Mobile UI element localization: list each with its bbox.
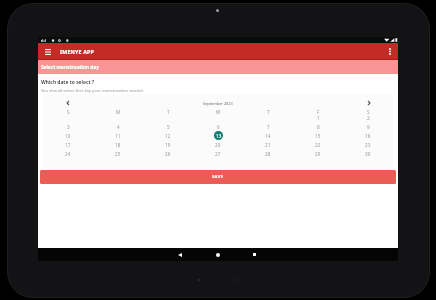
staticText: 14 xyxy=(265,133,271,139)
staticText: 5 xyxy=(167,124,170,130)
button[interactable]: 5 xyxy=(143,122,193,131)
staticText: 16 xyxy=(365,133,371,139)
button[interactable]: 9 xyxy=(343,122,393,131)
button[interactable]: 23 xyxy=(343,140,393,149)
staticText: 8 xyxy=(317,124,320,130)
button[interactable]: SAVE xyxy=(40,170,396,184)
button[interactable]: Previous month xyxy=(61,96,75,110)
button[interactable]: 12 xyxy=(143,131,193,140)
button[interactable]: 21 xyxy=(243,140,293,149)
button[interactable]: 25 xyxy=(93,149,143,158)
staticText: 2 xyxy=(367,115,370,121)
staticText: F xyxy=(317,109,320,115)
staticText: 6 xyxy=(217,124,220,130)
staticText: 22 xyxy=(315,142,321,148)
staticText: 29 xyxy=(315,151,321,157)
staticText: W xyxy=(216,109,221,115)
button[interactable]: 16 xyxy=(343,131,393,140)
button[interactable]: Navigation menu xyxy=(41,45,54,58)
button[interactable]: 6 xyxy=(193,122,243,131)
button[interactable]: 1 xyxy=(293,113,343,122)
button[interactable]: 7 xyxy=(243,122,293,131)
staticText: S xyxy=(67,109,70,115)
button[interactable]: 17 xyxy=(43,140,93,149)
staticText: 10 xyxy=(65,133,71,139)
button[interactable]: 19 xyxy=(143,140,193,149)
button[interactable]: 29 xyxy=(293,149,343,158)
button[interactable]: 30 xyxy=(343,149,393,158)
staticText: You should select first day your menstru… xyxy=(41,88,143,94)
button[interactable]: 20 xyxy=(193,140,243,149)
staticText: 4 xyxy=(117,124,120,130)
staticText: 9 xyxy=(367,124,370,130)
staticText: 19 xyxy=(165,142,171,148)
button[interactable]: 28 xyxy=(243,149,293,158)
staticText: 7 xyxy=(267,124,270,130)
button[interactable]: 26 xyxy=(143,149,193,158)
staticText: 30 xyxy=(365,151,371,157)
staticText: Which date to select ? xyxy=(41,79,95,86)
staticText: 23 xyxy=(365,142,371,148)
staticText: IMENYE APP xyxy=(60,48,94,55)
button[interactable]: 8 xyxy=(293,122,343,131)
staticText: T xyxy=(267,109,270,115)
button[interactable]: Home xyxy=(199,248,237,261)
staticText: September 2023 xyxy=(203,101,233,106)
staticText: 15 xyxy=(315,133,321,139)
button[interactable]: 14 xyxy=(243,131,293,140)
button[interactable]: 22 xyxy=(293,140,343,149)
staticText: 1 xyxy=(317,115,320,121)
staticText: 11 xyxy=(115,133,121,139)
staticText: S xyxy=(367,109,370,115)
staticText: Select menstruation day xyxy=(41,64,99,70)
button[interactable]: 4 xyxy=(93,122,143,131)
button[interactable]: Next month xyxy=(362,96,376,110)
staticText: 13 xyxy=(216,133,222,139)
button[interactable]: 2 xyxy=(343,113,393,122)
button[interactable]: 18 xyxy=(93,140,143,149)
staticText: 27 xyxy=(215,151,221,157)
button[interactable]: 10 xyxy=(43,131,93,140)
staticText: T xyxy=(167,109,170,115)
staticText: 12 xyxy=(165,133,171,139)
staticText: 3 xyxy=(67,124,70,130)
button[interactable]: 15 xyxy=(293,131,343,140)
button[interactable]: Recent apps xyxy=(237,248,275,261)
staticText: M xyxy=(116,109,121,115)
staticText: SAVE xyxy=(212,174,224,180)
staticText: 21 xyxy=(265,142,271,148)
button[interactable]: 11 xyxy=(93,131,143,140)
staticText: 26 xyxy=(165,151,171,157)
staticText: 24 xyxy=(65,151,71,157)
button[interactable]: 3 xyxy=(43,122,93,131)
staticText: 18 xyxy=(115,142,121,148)
button[interactable]: 13 xyxy=(193,131,243,140)
staticText: 25 xyxy=(115,151,121,157)
staticText: 17 xyxy=(65,142,71,148)
staticText: 28 xyxy=(265,151,271,157)
button[interactable]: More options xyxy=(383,44,397,58)
button[interactable]: 27 xyxy=(193,149,243,158)
button[interactable]: 24 xyxy=(43,149,93,158)
button[interactable]: Back xyxy=(161,248,199,261)
staticText: 20 xyxy=(215,142,221,148)
